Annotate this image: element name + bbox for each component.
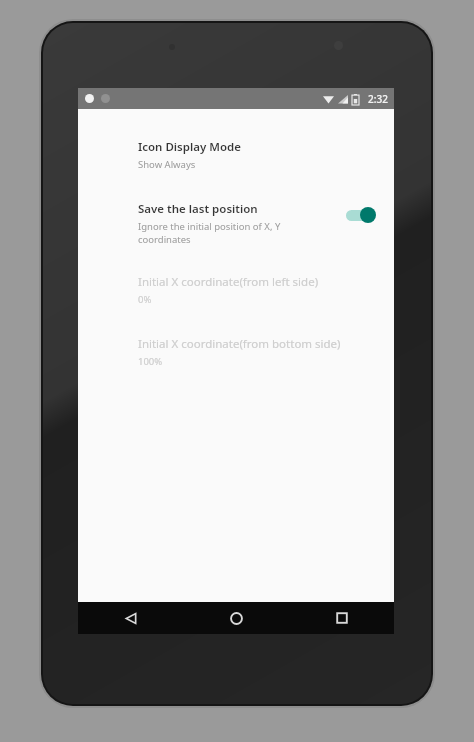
button[interactable]: Save the last position toggle [342, 205, 376, 225]
staticText: 100% [138, 355, 163, 368]
button[interactable]: Save the last position [138, 199, 376, 248]
staticText: 0% [138, 293, 152, 306]
staticText: Save the last position [138, 201, 258, 217]
button[interactable]: Recent apps [289, 602, 394, 634]
staticText: Initial X coordinate(from left side) [138, 274, 319, 290]
button[interactable]: Back [78, 602, 184, 634]
staticText: Initial X coordinate(from bottom side) [138, 336, 341, 352]
button[interactable]: Initial X coordinate(from left side) [138, 272, 376, 308]
staticText: Icon Display Mode [138, 139, 241, 155]
button[interactable]: Icon Display Mode [138, 137, 376, 173]
staticText: 2:32 [368, 92, 388, 106]
staticText: Show Always [138, 158, 196, 171]
button[interactable]: Home [184, 602, 289, 634]
staticText: Ignore the initial position of X, Y coor… [138, 220, 281, 246]
button[interactable]: Initial X coordinate(from bottom side) [138, 334, 376, 370]
